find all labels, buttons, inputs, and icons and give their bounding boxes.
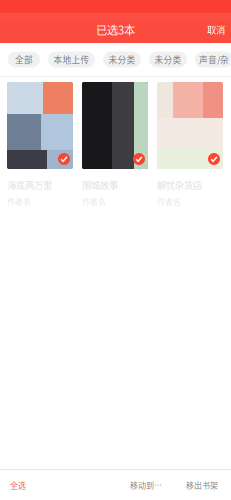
button[interactable]: 取消 <box>201 17 231 42</box>
staticText: 声音/杂 <box>199 53 229 66</box>
staticText: 本地上传 <box>53 53 89 66</box>
button[interactable]: 移出书架 <box>180 471 224 499</box>
staticText: 全部 <box>15 53 33 66</box>
staticText: 移动到… <box>130 479 162 491</box>
staticText: 作者名 <box>82 195 106 207</box>
button[interactable]: 解忧杂货店 <box>157 82 223 207</box>
staticText: 解忧杂货店 <box>157 178 202 191</box>
button[interactable]: 未分类 <box>103 51 141 67</box>
staticText: 海底两万里 <box>7 178 52 191</box>
staticText: 全选 <box>10 479 26 491</box>
staticText: 作者名 <box>157 195 181 207</box>
staticText: 未分类 <box>108 53 135 66</box>
staticText: 未分类 <box>154 53 181 66</box>
button[interactable]: 全选 <box>0 471 36 499</box>
staticText: 作者名 <box>7 195 31 207</box>
staticText: 移出书架 <box>186 479 218 491</box>
button[interactable]: 围城故事 <box>82 82 148 207</box>
button[interactable]: 声音/杂 <box>195 51 231 67</box>
button[interactable]: 未分类 <box>149 51 187 67</box>
staticText: 围城故事 <box>82 178 118 191</box>
button[interactable]: 本地上传 <box>48 51 95 67</box>
button[interactable]: 移动到… <box>124 471 168 499</box>
staticText: 已选3本 <box>96 21 135 38</box>
button[interactable]: 全部 <box>8 51 40 67</box>
staticText: 取消 <box>207 23 225 36</box>
button[interactable]: 海底两万里 <box>7 82 73 207</box>
